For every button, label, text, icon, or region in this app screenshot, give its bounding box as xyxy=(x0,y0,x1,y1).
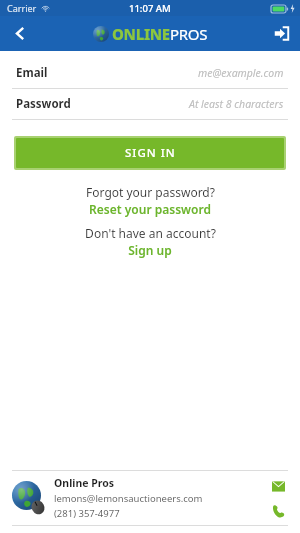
staticText: At least 8 characters xyxy=(189,97,284,111)
button[interactable]: Call us xyxy=(268,501,288,521)
button[interactable]: Sign in xyxy=(262,16,300,51)
button[interactable]: SIGN IN xyxy=(16,138,284,168)
staticText: Forgot your password? xyxy=(86,184,215,200)
staticText: ONLINE xyxy=(112,24,170,44)
staticText: Online Pros xyxy=(54,476,115,490)
staticText: Reset your password xyxy=(89,201,211,217)
button[interactable]: Email us xyxy=(268,476,288,496)
button[interactable]: Email xyxy=(0,58,300,88)
staticText: Sign up xyxy=(128,242,172,258)
button[interactable]: Sign up xyxy=(128,242,172,258)
staticText: Don't have an account? xyxy=(85,225,216,241)
staticText: SIGN IN xyxy=(125,145,176,161)
staticText: Password xyxy=(16,96,71,112)
staticText: PROS xyxy=(170,24,208,44)
staticText: me@example.com xyxy=(198,66,284,80)
button[interactable]: Reset your password xyxy=(89,201,211,217)
staticText: 11:07 AM xyxy=(129,2,171,15)
staticText: Email xyxy=(16,65,48,81)
staticText: (281) 357-4977 xyxy=(54,507,120,520)
staticText: Carrier xyxy=(7,2,37,14)
button[interactable]: Password xyxy=(0,89,300,119)
staticText: lemons@lemonsauctioneers.com xyxy=(54,492,203,505)
button[interactable]: Back xyxy=(0,16,40,51)
